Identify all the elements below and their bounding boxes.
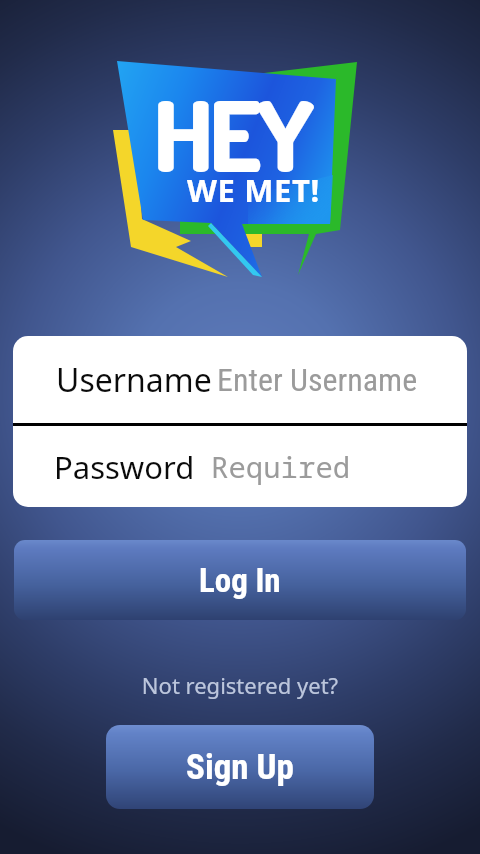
- staticText: Required: [211, 447, 351, 486]
- button[interactable]: Username: [13, 336, 467, 423]
- button[interactable]: Password: [13, 426, 467, 507]
- staticText: HEY: [153, 71, 310, 195]
- button[interactable]: Sign Up: [106, 725, 374, 809]
- staticText: Not registered yet?: [0, 670, 480, 700]
- staticText: Enter Username: [217, 361, 418, 399]
- staticText: Username: [56, 358, 212, 402]
- staticText: Password: [54, 446, 195, 488]
- staticText: Sign Up: [186, 747, 294, 788]
- button[interactable]: Log In: [14, 540, 466, 620]
- staticText: Log In: [199, 561, 281, 600]
- staticText: WE MET!: [187, 169, 320, 211]
